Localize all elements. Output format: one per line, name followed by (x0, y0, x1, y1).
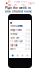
button[interactable]: Home tab (10, 54, 15, 57)
staticText: Sprint plan (10, 37, 19, 39)
staticText: 11:15 (25, 37, 30, 39)
staticText: 9:30 (26, 29, 30, 31)
staticText: 15:45 (25, 44, 30, 47)
button[interactable]: Pricing (21, 0, 27, 6)
staticText: Standup (10, 33, 17, 35)
button[interactable]: Design review (10, 28, 30, 32)
staticText: 13:00 (25, 40, 30, 43)
staticText: This week (10, 25, 22, 28)
button[interactable]: Tab (15, 54, 20, 57)
button[interactable]: 1:1 with Sam (10, 40, 30, 44)
staticText: 16:30 (25, 48, 30, 50)
button[interactable]: Log in (28, 2, 34, 5)
staticText: one shared view. (5, 10, 32, 13)
button[interactable]: Acme (6, 0, 12, 10)
staticText: Log in (28, 2, 34, 5)
button[interactable]: Standup (10, 32, 30, 36)
staticText: 1:1 with Sam (10, 40, 23, 43)
button[interactable]: Tab (25, 54, 30, 57)
button[interactable]: Sprint plan (10, 36, 30, 40)
staticText: Pricing (21, 0, 27, 6)
staticText: Design review (10, 29, 22, 31)
staticText: Ship build (10, 44, 17, 47)
button[interactable]: Retro (10, 47, 30, 51)
staticText: Product (14, 0, 20, 6)
button[interactable]: Ship build (10, 44, 30, 47)
staticText: Plan the week in (5, 6, 31, 10)
button[interactable]: Tab (20, 54, 25, 57)
button[interactable]: Product (14, 0, 20, 6)
staticText: Acme (8, 0, 12, 10)
staticText: Retro (10, 48, 15, 50)
staticText: 10:00 (25, 33, 30, 35)
